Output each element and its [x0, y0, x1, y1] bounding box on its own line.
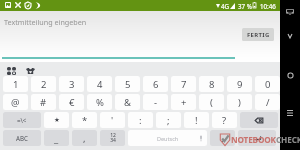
button[interactable]: 3 [59, 76, 84, 92]
staticText: ? [222, 114, 227, 127]
staticText: ; [167, 114, 170, 127]
staticText: FERTIG [247, 31, 270, 39]
staticText: - [154, 96, 158, 109]
button[interactable]: Emoji keyboard [5, 64, 18, 77]
button[interactable]: # [31, 94, 56, 110]
button[interactable]: ! [184, 112, 209, 128]
staticText: 9 [237, 78, 243, 91]
button[interactable]: ★ [44, 112, 69, 128]
staticText: Deutsch [157, 135, 179, 142]
button[interactable]: 4 [87, 76, 112, 92]
staticText: @ [11, 96, 20, 109]
staticText: € [69, 96, 75, 109]
staticText: 3 [69, 78, 75, 91]
button[interactable]: , [72, 130, 97, 146]
button[interactable]: Deutsch [128, 130, 207, 146]
staticText: _ [54, 132, 59, 145]
button[interactable]: =\< [3, 112, 41, 128]
button[interactable]: & [115, 94, 140, 110]
staticText: # [40, 96, 47, 109]
button[interactable]: FERTIG [242, 28, 274, 41]
staticText: / [266, 96, 270, 109]
staticText: 0 [265, 78, 271, 91]
staticText: 1 [13, 78, 19, 91]
button[interactable]: ; [156, 112, 181, 128]
staticText: 5 [125, 78, 131, 91]
button[interactable]: + [171, 94, 196, 110]
staticText: + [181, 96, 187, 109]
button[interactable]: € [59, 94, 84, 110]
staticText: Textmitteilung eingeben [4, 17, 87, 27]
staticText: : [139, 114, 142, 127]
button[interactable]: ' [100, 112, 125, 128]
staticText: ' [111, 114, 114, 127]
button[interactable]: 8 [199, 76, 224, 92]
staticText: =\< [17, 116, 27, 124]
staticText: CHECK [276, 134, 300, 145]
staticText: NOTEBOOK [231, 134, 276, 145]
staticText: 37 % [238, 2, 252, 10]
button[interactable]: : [128, 112, 153, 128]
button[interactable]: 6 [143, 76, 168, 92]
button[interactable]: Stickers [24, 64, 37, 77]
button[interactable]: @ [3, 94, 28, 110]
staticText: % [96, 96, 104, 109]
staticText: , [83, 132, 86, 145]
button[interactable]: Hide keyboard [282, 6, 297, 17]
button[interactable]: 2 [31, 76, 56, 92]
button[interactable]: 0 [255, 76, 280, 92]
button[interactable]: ? [212, 112, 237, 128]
staticText: . [221, 132, 224, 145]
button[interactable]: 1 [3, 76, 28, 92]
staticText: 6 [153, 78, 159, 91]
button[interactable]: - [143, 94, 168, 110]
staticText: 8 [209, 78, 215, 91]
staticText: 2 [41, 78, 47, 91]
button[interactable]: / [255, 94, 280, 110]
staticText: ! [195, 114, 198, 127]
button[interactable]: Enter [238, 130, 276, 146]
staticText: & [124, 96, 131, 109]
staticText: 4G [221, 2, 230, 10]
staticText: 4 [97, 78, 103, 91]
staticText: ABC [16, 134, 28, 142]
button[interactable]: ABC [3, 130, 41, 146]
button[interactable]: 12 34 [100, 130, 125, 146]
button[interactable]: 5 [115, 76, 140, 92]
button[interactable]: * [72, 112, 97, 128]
button[interactable]: _ [44, 130, 69, 146]
button[interactable]: Home [283, 68, 297, 82]
button[interactable]: . [210, 130, 235, 146]
staticText: ) [238, 96, 241, 109]
staticText: 12 34 [110, 132, 116, 144]
button[interactable]: Backspace [240, 112, 278, 128]
button[interactable]: ) [227, 94, 252, 110]
button[interactable]: Recent apps [283, 106, 297, 120]
button[interactable]: % [87, 94, 112, 110]
button[interactable]: ( [199, 94, 224, 110]
staticText: * [82, 114, 88, 127]
button[interactable]: Back [283, 29, 297, 43]
staticText: ★ [54, 116, 60, 124]
staticText: 10:46 [260, 2, 276, 10]
staticText: 7 [181, 78, 187, 91]
button[interactable]: 9 [227, 76, 252, 92]
staticText: ( [210, 96, 213, 109]
button[interactable]: 7 [171, 76, 196, 92]
